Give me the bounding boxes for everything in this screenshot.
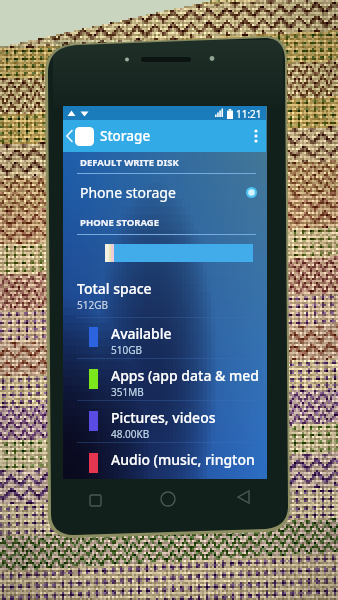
staticText: Phone storage <box>80 183 176 202</box>
staticText: 512GB <box>77 298 108 312</box>
staticText: 510GB <box>111 343 142 357</box>
staticText: DEFAULT WRITE DISK <box>80 156 179 169</box>
button[interactable]: Pictures, videos <box>63 408 266 450</box>
button[interactable]: Audio (music, rington <box>63 450 266 492</box>
staticText: Available <box>111 324 172 343</box>
button[interactable]: Phone storage <box>63 180 266 204</box>
staticText: Total space <box>77 279 152 298</box>
staticText: Storage <box>100 127 151 145</box>
staticText: Pictures, videos <box>111 408 216 427</box>
button[interactable]: Navigate up <box>63 120 266 152</box>
staticText: 351MB <box>111 385 144 399</box>
button[interactable]: Available <box>63 324 266 366</box>
staticText: Audio (music, rington <box>111 450 255 469</box>
staticText: 48.00KB <box>111 427 150 441</box>
staticText: Apps (app data & med <box>111 366 259 385</box>
button[interactable]: Apps (app data & med <box>63 366 266 408</box>
button[interactable]: More options <box>246 120 266 152</box>
staticText: 11:21 <box>236 107 262 121</box>
staticText: PHONE STORAGE <box>80 216 160 229</box>
